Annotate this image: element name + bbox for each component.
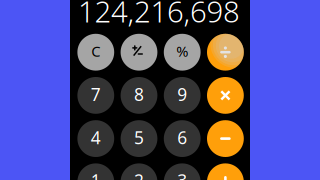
staticText: 4: [91, 126, 101, 149]
button[interactable]: Subtract: [207, 120, 244, 157]
staticText: 7: [91, 83, 101, 106]
staticText: C: [91, 41, 100, 61]
button[interactable]: 6: [164, 120, 201, 157]
staticText: 2: [134, 169, 144, 180]
button[interactable]: 7: [77, 77, 114, 114]
staticText: 8: [134, 83, 144, 106]
button[interactable]: 4: [77, 120, 114, 157]
button[interactable]: 8: [121, 77, 157, 114]
button[interactable]: 2: [121, 163, 157, 180]
button[interactable]: 1: [77, 163, 114, 180]
staticText: 124,216,698: [78, 0, 240, 30]
staticText: 3: [177, 169, 187, 180]
button[interactable]: Add: [207, 163, 244, 180]
staticText: 6: [177, 126, 187, 149]
button[interactable]: 9: [164, 77, 201, 114]
staticText: %: [176, 41, 188, 61]
button[interactable]: %: [164, 34, 201, 71]
button[interactable]: C: [77, 34, 114, 71]
button[interactable]: 3: [164, 163, 201, 180]
staticText: 5: [134, 126, 144, 149]
button[interactable]: Plus minus: [121, 34, 157, 71]
staticText: 9: [177, 83, 187, 106]
button[interactable]: 5: [121, 120, 157, 157]
staticText: 1: [91, 169, 101, 180]
button[interactable]: Multiply: [207, 77, 244, 114]
button[interactable]: Divide: [207, 34, 244, 71]
